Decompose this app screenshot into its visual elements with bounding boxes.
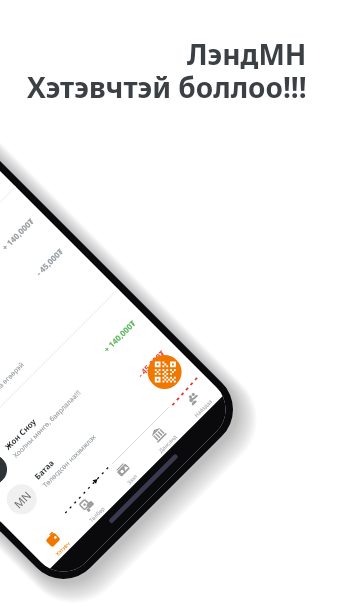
staticText: - 45,000₮: [135, 347, 167, 380]
staticText: Төлөгдсөн нэхэмжлэх: [41, 432, 98, 489]
button[interactable]: Жон Сноу: [0, 301, 160, 506]
staticText: Төлбөр: [87, 505, 106, 523]
staticText: Жон Сноу: [2, 416, 38, 452]
button[interactable]: Төлбөр: [56, 474, 116, 534]
staticText: + 140,000₮: [101, 318, 138, 354]
staticText: ЛэндМН: [187, 35, 307, 73]
staticText: MN: [10, 487, 34, 511]
staticText: Хэтэвч: [54, 540, 71, 557]
button[interactable]: MN: [0, 331, 190, 536]
staticText: Найздаа: [192, 397, 213, 419]
staticText: Зээлээ дараа өгөөрэй: [0, 360, 26, 417]
button[interactable]: ДМ: [0, 170, 29, 375]
button[interactable]: ДБ: [0, 199, 59, 405]
staticText: - 45,000₮: [33, 245, 66, 278]
staticText: Хэтэвчтэй боллоо!!!: [27, 68, 307, 106]
button[interactable]: Дансанд: [126, 403, 187, 464]
staticText: Батаа: [32, 457, 56, 482]
staticText: Зээл: [125, 472, 138, 486]
staticText: Хоолны мөнгө, баярлалаа!!!: [11, 388, 83, 460]
staticText: Дансанд: [157, 433, 178, 454]
button[interactable]: Зээл: [91, 438, 152, 499]
button[interactable]: Хэтэвч: [22, 508, 82, 569]
button[interactable]: АБ: [0, 229, 88, 434]
button[interactable]: Найздаа: [162, 368, 223, 429]
button[interactable]: ТЭ: [0, 259, 118, 464]
button[interactable]: Scan QR code: [141, 348, 189, 396]
staticText: + 140,000₮: [0, 216, 36, 252]
